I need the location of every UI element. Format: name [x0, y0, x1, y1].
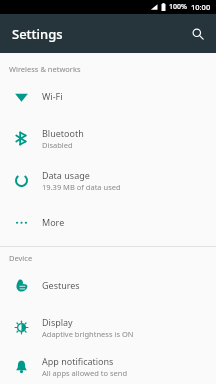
staticText: 100% — [169, 2, 187, 12]
staticText: Disabled — [42, 140, 73, 150]
staticText: Data usage — [42, 169, 90, 181]
staticText: Adaptive brightness is ON — [42, 329, 134, 339]
staticText: 19.39 MB of data used — [42, 182, 121, 192]
staticText: Bluetooth — [42, 127, 84, 139]
button[interactable]: Display — [0, 306, 216, 348]
staticText: 10:00 — [191, 2, 211, 12]
staticText: App notifications — [42, 355, 114, 367]
staticText: Device — [9, 253, 216, 263]
staticText: Gestures — [42, 279, 80, 291]
button[interactable]: Gestures — [0, 264, 216, 306]
staticText: Wireless & networks — [9, 64, 216, 74]
staticText: Wi-Fi — [42, 90, 63, 102]
staticText: More — [42, 216, 65, 228]
staticText: All apps allowed to send — [42, 368, 128, 378]
button[interactable]: App notifications — [0, 348, 216, 384]
button[interactable]: Bluetooth — [0, 117, 216, 159]
button[interactable]: Data usage — [0, 159, 216, 201]
button[interactable]: Wi-Fi — [0, 75, 216, 117]
button[interactable]: More — [0, 201, 216, 243]
staticText: Settings — [12, 25, 63, 43]
button[interactable]: Search — [185, 21, 211, 47]
staticText: Display — [42, 316, 73, 328]
